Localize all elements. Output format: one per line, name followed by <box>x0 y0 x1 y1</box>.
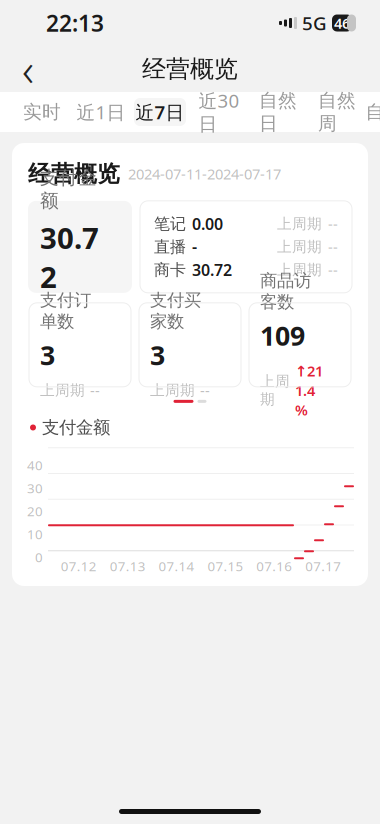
button[interactable]: 实时 <box>16 98 68 126</box>
button[interactable]: 自然日 <box>252 98 304 126</box>
staticText: 07.17 <box>305 557 341 575</box>
button[interactable]: 返回 <box>6 47 50 91</box>
staticText: 上周期 <box>277 215 322 233</box>
staticText: 支付买家数 <box>150 290 201 332</box>
staticText: 30.72 <box>192 259 232 280</box>
button[interactable]: 近1日 <box>75 98 127 126</box>
staticText: 3 <box>150 337 165 373</box>
staticText: 经营概览 <box>28 160 120 188</box>
staticText: 商卡 <box>154 260 186 280</box>
staticText: 上周期 <box>40 381 85 399</box>
staticText: 近30日 <box>198 88 239 136</box>
staticText: 07.12 <box>61 557 97 575</box>
button[interactable]: 更多时间范围 <box>370 98 380 126</box>
staticText: 07.15 <box>207 557 243 575</box>
staticText: 上周期 <box>40 307 88 327</box>
staticText: 经营概览 <box>142 54 238 84</box>
staticText: 上周期 <box>277 238 322 256</box>
staticText: 直播 <box>154 237 186 257</box>
staticText: 上周期 <box>260 372 290 408</box>
staticText: 22:13 <box>46 8 104 38</box>
staticText: 上周期 <box>277 261 322 279</box>
staticText: 46 <box>334 13 350 33</box>
staticText: 20 <box>27 502 43 520</box>
staticText: 近1日 <box>76 100 125 124</box>
staticText: 笔记 <box>154 214 186 234</box>
staticText: ↑211.4% <box>295 361 323 419</box>
staticText: 支付金额 <box>42 417 110 438</box>
staticText: 实时 <box>23 100 61 123</box>
button[interactable]: 自然周 <box>311 98 363 126</box>
staticText: 自然日 <box>259 89 297 135</box>
staticText: -- <box>328 260 338 280</box>
staticText: 上周期 <box>150 381 195 399</box>
staticText: 109 <box>260 318 305 353</box>
staticText: -- <box>90 381 100 400</box>
staticText: 2024-07-11-2024-07-17 <box>128 164 281 184</box>
button[interactable]: 近30日 <box>193 98 245 126</box>
staticText: 07.16 <box>256 557 292 575</box>
staticText: 0.00 <box>192 213 223 234</box>
staticText: -- <box>328 214 338 234</box>
staticText: - <box>192 236 197 257</box>
staticText: 自然周 <box>318 89 356 135</box>
staticText: 40 <box>27 456 43 474</box>
staticText: 10 <box>27 525 43 543</box>
staticText: -- <box>328 237 338 257</box>
staticText: -- <box>200 381 210 400</box>
staticText: 07.13 <box>110 557 146 575</box>
staticText: 支付订单数 <box>40 290 91 332</box>
staticText: 支付金额 <box>40 166 97 212</box>
staticText: 0 <box>35 548 43 566</box>
staticText: 5G <box>302 11 327 35</box>
staticText: 自 <box>365 100 380 123</box>
staticText: 07.14 <box>159 557 195 575</box>
staticText: 30.72 <box>40 218 99 296</box>
staticText: 3 <box>40 337 55 373</box>
staticText: ‹ <box>22 39 34 99</box>
staticText: 30 <box>27 479 43 497</box>
button[interactable]: 近7日 <box>134 98 186 126</box>
staticText: 近7日 <box>135 100 184 124</box>
staticText: 商品访客数 <box>260 270 311 313</box>
